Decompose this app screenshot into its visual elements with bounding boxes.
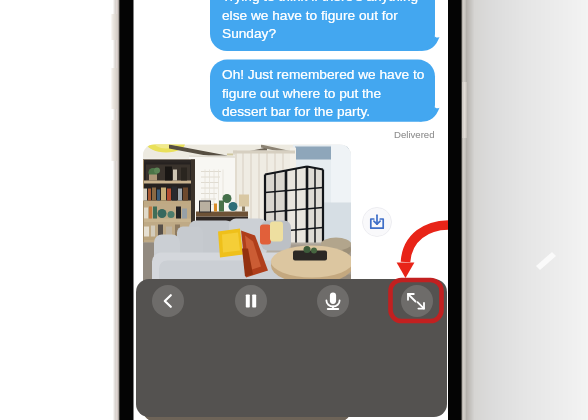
- button[interactable]: Save image: [362, 207, 392, 237]
- button[interactable]: Expand: [401, 285, 433, 317]
- staticText: Oh! Just remembered we have to figure ou…: [222, 67, 425, 119]
- button[interactable]: Microphone: [317, 285, 349, 317]
- staticText: Delivered: [394, 129, 435, 140]
- staticText: Trying to think if there's anything else…: [222, 0, 419, 41]
- button[interactable]: Back: [152, 285, 184, 317]
- button[interactable]: Pause: [235, 285, 267, 317]
